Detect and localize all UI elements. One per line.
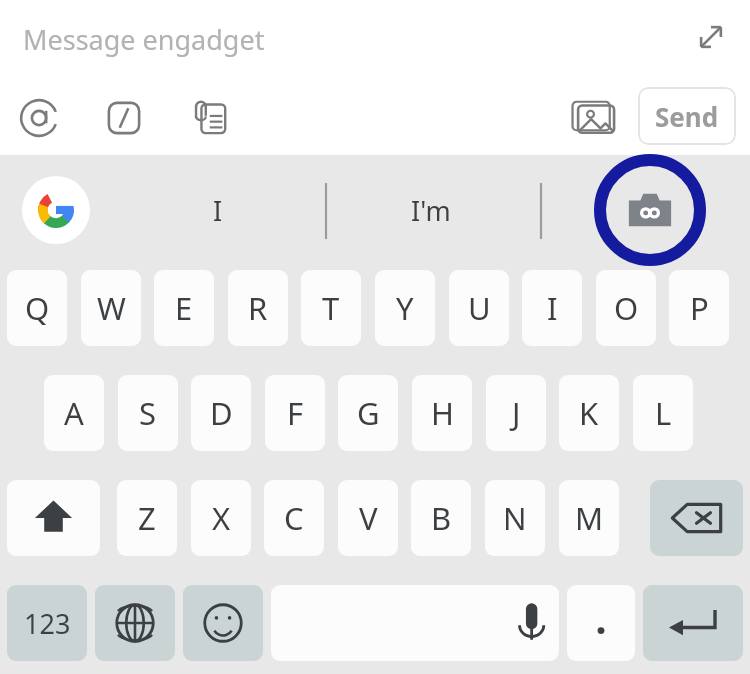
button[interactable]: C	[264, 480, 324, 556]
button[interactable]: Emoji	[183, 585, 263, 661]
staticText: N	[503, 497, 527, 539]
staticText: F	[287, 392, 304, 434]
button[interactable]: I	[522, 270, 582, 346]
button[interactable]: Send	[638, 87, 736, 145]
button[interactable]: Q	[7, 270, 67, 346]
button[interactable]: Enter	[643, 585, 743, 661]
button[interactable]: U	[449, 270, 509, 346]
staticText: I'm	[411, 192, 451, 229]
staticText: E	[175, 287, 193, 329]
button[interactable]: S	[118, 375, 178, 451]
button[interactable]: H	[412, 375, 472, 451]
button[interactable]: Space	[271, 585, 559, 661]
button[interactable]: Expand	[682, 8, 740, 66]
staticText: X	[212, 497, 231, 539]
staticText: M	[575, 497, 604, 539]
button[interactable]: F	[265, 375, 325, 451]
staticText: U	[468, 287, 491, 329]
button[interactable]: G	[338, 375, 398, 451]
button[interactable]: I'm	[372, 155, 490, 265]
staticText: A	[64, 392, 84, 434]
staticText: R	[248, 287, 268, 329]
button[interactable]	[7, 585, 87, 661]
button[interactable]: Period	[567, 585, 635, 661]
button[interactable]: L	[633, 375, 693, 451]
button[interactable]: W	[81, 270, 141, 346]
staticText: I	[213, 192, 223, 229]
button[interactable]: R	[228, 270, 288, 346]
button[interactable]: T	[301, 270, 361, 346]
button[interactable]: O	[596, 270, 656, 346]
button[interactable]: Y	[375, 270, 435, 346]
staticText: Q	[25, 287, 50, 329]
staticText: 123	[24, 605, 71, 642]
button[interactable]: J	[486, 375, 546, 451]
button[interactable]: M	[559, 480, 619, 556]
staticText: D	[210, 392, 233, 434]
button[interactable]: Z	[117, 480, 177, 556]
staticText: I	[547, 287, 558, 329]
staticText: G	[357, 392, 380, 434]
button[interactable]: P	[669, 270, 729, 346]
button[interactable]: B	[411, 480, 471, 556]
button[interactable]: Attach file	[182, 91, 236, 145]
staticText: C	[284, 497, 304, 539]
button[interactable]: Backspace	[650, 480, 743, 556]
staticText: J	[512, 392, 521, 434]
button[interactable]: Google Lens	[626, 186, 674, 234]
button[interactable]: K	[559, 375, 619, 451]
button[interactable]: E	[154, 270, 214, 346]
staticText: Z	[138, 497, 156, 539]
button[interactable]: A	[44, 375, 104, 451]
staticText: V	[359, 497, 378, 539]
button[interactable]: Slash command	[97, 91, 151, 145]
button[interactable]: Shift	[7, 480, 100, 556]
button[interactable]: Change language	[95, 585, 175, 661]
button[interactable]: V	[338, 480, 398, 556]
staticText: K	[579, 392, 599, 434]
staticText: H	[431, 392, 454, 434]
button[interactable]: I	[168, 155, 268, 265]
staticText: P	[690, 287, 709, 329]
staticText: L	[655, 392, 672, 434]
button[interactable]: D	[191, 375, 251, 451]
button[interactable]: Photos	[562, 85, 624, 147]
staticText: Y	[396, 287, 414, 329]
staticText: B	[431, 497, 452, 539]
staticText: Send	[655, 99, 719, 134]
staticText: W	[97, 287, 126, 329]
button[interactable]: Mention	[12, 91, 66, 145]
staticText: T	[322, 287, 340, 329]
staticText: S	[139, 392, 157, 434]
button[interactable]: X	[191, 480, 251, 556]
staticText: O	[614, 287, 639, 329]
staticText: Message engadget	[23, 21, 265, 58]
button[interactable]: Google	[22, 176, 90, 244]
button[interactable]: N	[485, 480, 545, 556]
